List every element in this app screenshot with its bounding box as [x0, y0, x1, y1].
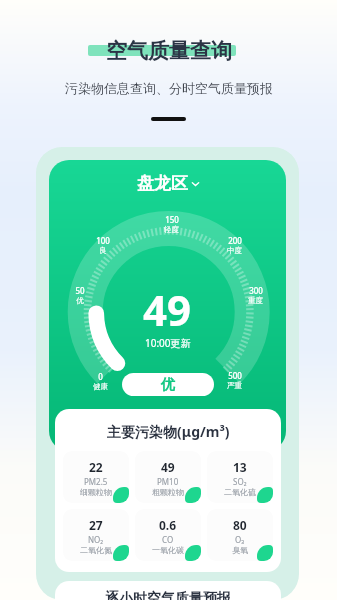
staticText: 300 — [249, 285, 263, 296]
button[interactable]: 优 — [122, 373, 214, 396]
staticText: 13 — [233, 459, 247, 475]
button[interactable]: 逐小时空气质量预报 — [55, 581, 281, 600]
staticText: 500 — [228, 370, 242, 381]
staticText: 49 — [161, 459, 175, 475]
staticText: 10:00更新 — [145, 336, 191, 350]
button[interactable]: 22 — [63, 451, 129, 503]
staticText: O₃ — [235, 534, 245, 545]
staticText: 重度 — [248, 296, 263, 305]
button[interactable]: 27 — [63, 509, 129, 561]
staticText: 27 — [89, 517, 103, 533]
staticText: 轻度 — [164, 225, 179, 234]
staticText: SO₂ — [233, 476, 247, 487]
staticText: 80 — [233, 517, 247, 533]
button[interactable]: 13 — [207, 451, 273, 503]
staticText: 粗颗粒物 — [152, 487, 184, 497]
staticText: 22 — [89, 459, 103, 475]
staticText: 臭氧 — [232, 545, 248, 555]
button[interactable]: 0.6 — [135, 509, 201, 561]
staticText: 中度 — [227, 246, 242, 255]
staticText: 良 — [99, 246, 107, 255]
staticText: 主要污染物(μg/m³) — [107, 422, 230, 441]
staticText: 逐小时空气质量预报 — [105, 590, 231, 600]
staticText: 200 — [228, 235, 242, 246]
staticText: 二氧化硫 — [224, 487, 256, 497]
button[interactable]: 80 — [207, 509, 273, 561]
staticText: 150 — [165, 214, 179, 225]
staticText: 50 — [75, 285, 85, 296]
staticText: 盘龙区 — [137, 173, 188, 194]
staticText: PM2.5 — [84, 476, 108, 487]
staticText: 严重 — [227, 381, 242, 390]
staticText: 细颗粒物 — [80, 487, 112, 497]
staticText: 49 — [143, 281, 192, 338]
button[interactable]: 盘龙区 — [137, 173, 200, 194]
staticText: 0.6 — [159, 517, 177, 533]
staticText: 0 — [98, 371, 103, 382]
staticText: CO — [162, 534, 174, 545]
staticText: 污染物信息查询、分时空气质量预报 — [65, 80, 273, 96]
staticText: 一氧化碳 — [152, 545, 184, 555]
staticText: 100 — [96, 235, 110, 246]
staticText: NO₂ — [88, 534, 104, 545]
staticText: 优 — [161, 376, 175, 394]
staticText: PM10 — [157, 476, 179, 487]
button[interactable]: 49 — [135, 451, 201, 503]
staticText: 健康 — [93, 382, 108, 391]
staticText: 二氧化氮 — [80, 545, 112, 555]
staticText: 优 — [76, 296, 84, 305]
staticText: 空气质量查询 — [106, 38, 232, 64]
